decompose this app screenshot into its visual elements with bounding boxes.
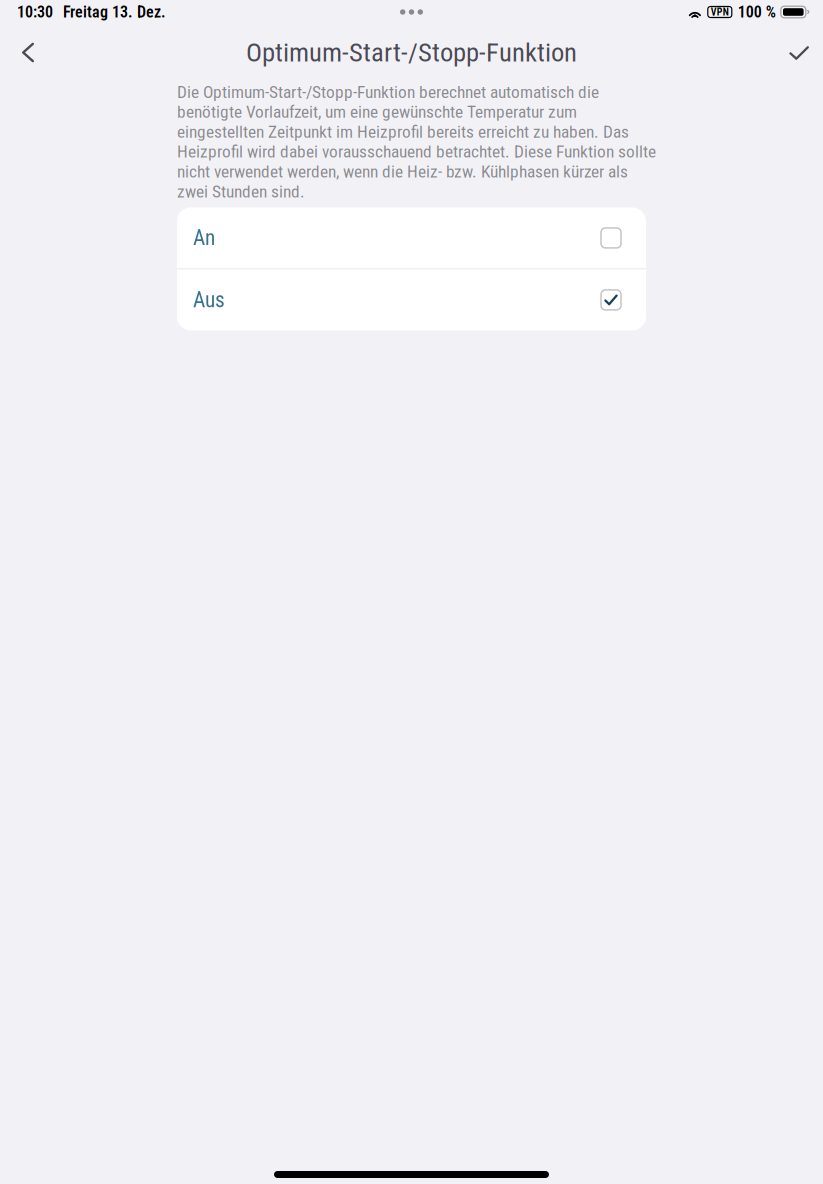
staticText: 10:30 <box>17 3 53 21</box>
staticText: Freitag 13. Dez. <box>63 3 166 21</box>
button[interactable]: Aus <box>177 269 646 330</box>
staticText: Optimum-Start-/Stopp-Funktion <box>246 37 577 68</box>
staticText: VPN <box>711 6 729 18</box>
button[interactable]: Back <box>0 24 56 78</box>
staticText: 100 % <box>738 3 776 21</box>
staticText: An <box>193 225 215 250</box>
button[interactable]: Done <box>767 24 823 78</box>
button[interactable]: An <box>177 207 646 268</box>
staticText: Die Optimum-Start-/Stopp-Funktion berech… <box>177 82 656 201</box>
staticText: Aus <box>193 287 225 312</box>
